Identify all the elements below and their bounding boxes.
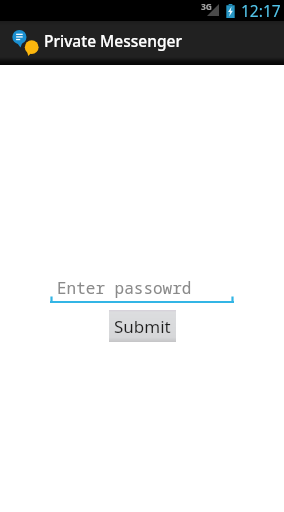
button[interactable]: Private Messenger, app icon — [6, 22, 46, 62]
staticText: Enter passowrd — [57, 277, 192, 299]
staticText: 12:17 — [241, 0, 281, 21]
staticText: 3G — [201, 1, 213, 13]
staticText: Submit — [114, 315, 171, 338]
button[interactable]: Submit — [109, 310, 176, 342]
staticText: Private Messenger — [44, 30, 182, 51]
button[interactable]: Enter passowrd — [50, 277, 234, 304]
